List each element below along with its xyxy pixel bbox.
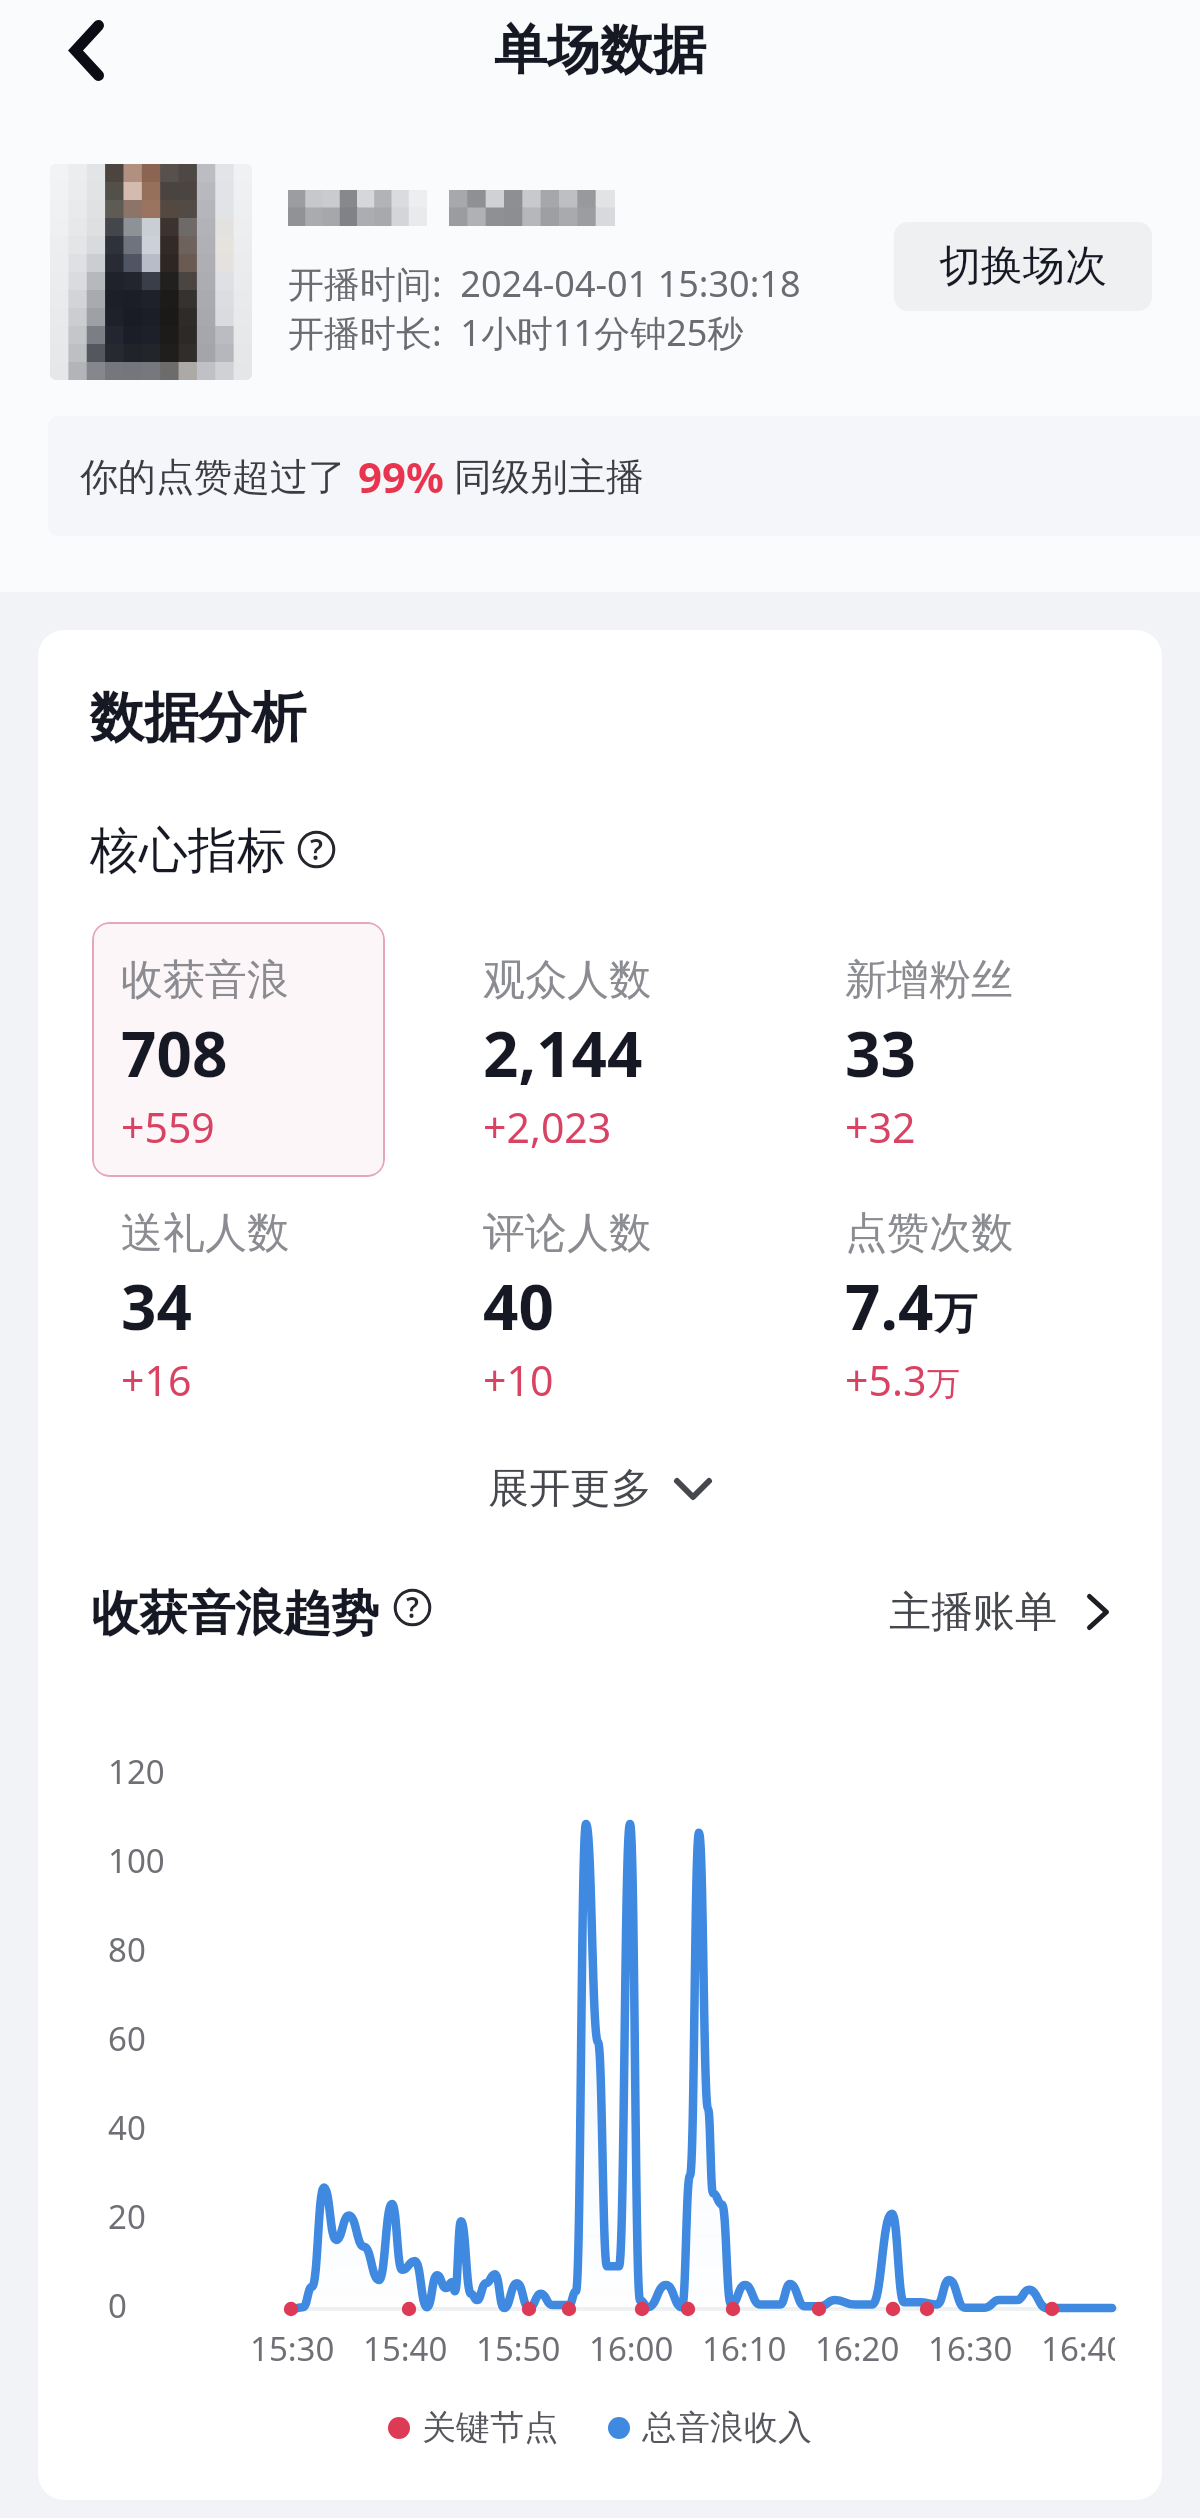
staticText: 展开更多 [488, 1463, 652, 1515]
staticText: 万 [927, 1363, 960, 1405]
button[interactable] [92, 922, 385, 1177]
staticText: 同级别主播 [454, 453, 644, 501]
staticText: 15:40 [363, 2326, 448, 2371]
staticText: ? [406, 1588, 419, 1626]
staticText: +16 [121, 1352, 192, 1408]
staticText: 新增粉丝 [845, 954, 1013, 1007]
staticText: 7.4 [845, 1264, 934, 1348]
staticText: 关键节点 [422, 2406, 558, 2449]
staticText: 15:50 [476, 2326, 561, 2371]
staticText: 16:00 [589, 2326, 674, 2371]
staticText: 40 [108, 2105, 146, 2150]
staticText: 33 [845, 1011, 916, 1095]
staticText: ? [310, 830, 323, 868]
button[interactable]: 切换场次 [894, 222, 1152, 311]
staticText: 评论人数 [483, 1207, 651, 1260]
staticText: 20 [108, 2194, 146, 2239]
staticText: 收获音浪 [121, 954, 289, 1007]
staticText: 万 [934, 1287, 977, 1341]
staticText: +32 [845, 1099, 916, 1155]
staticText: 15:30 [250, 2326, 335, 2371]
button[interactable]: Back [39, 2, 135, 98]
staticText: +10 [483, 1352, 554, 1408]
staticText: 你的点赞超过了 [80, 453, 346, 501]
staticText: 送礼人数 [121, 1207, 289, 1260]
staticText: 核心指标 [90, 820, 286, 882]
staticText: 40 [483, 1264, 554, 1348]
staticText: +559 [121, 1099, 215, 1155]
staticText: 100 [108, 1838, 165, 1883]
staticText: 观众人数 [483, 954, 651, 1007]
staticText: 点赞次数 [845, 1207, 1013, 1260]
staticText: 0 [108, 2283, 127, 2328]
staticText: +2,023 [483, 1099, 612, 1155]
staticText: 99% [358, 448, 444, 505]
staticText: 60 [108, 2016, 146, 2061]
staticText: 80 [108, 1927, 146, 1972]
staticText: 34 [121, 1264, 192, 1348]
staticText: 切换场次 [939, 240, 1107, 293]
button[interactable]: 主播账单 [889, 1577, 1109, 1647]
staticText: +5.3 [845, 1352, 927, 1408]
staticText: 16:20 [815, 2326, 900, 2371]
staticText: 开播时间: 2024-04-01 15:30:18 [288, 259, 801, 308]
staticText: 总音浪收入 [642, 2406, 812, 2449]
staticText: 708 [121, 1011, 228, 1095]
staticText: 16:30 [928, 2326, 1013, 2371]
staticText: 数据分析 [90, 684, 306, 752]
staticText: 开播时长: 1小时11分钟25秒 [288, 308, 744, 357]
button[interactable]: 展开更多 [38, 1450, 1162, 1528]
staticText: 单场数据 [494, 17, 706, 84]
staticText: 收获音浪趋势 [91, 1584, 379, 1644]
staticText: 120 [108, 1749, 165, 1794]
staticText: 16:10 [702, 2326, 787, 2371]
staticText: 16:40 [1041, 2326, 1115, 2371]
staticText: 主播账单 [889, 1586, 1057, 1639]
staticText: 2,144 [483, 1011, 643, 1095]
